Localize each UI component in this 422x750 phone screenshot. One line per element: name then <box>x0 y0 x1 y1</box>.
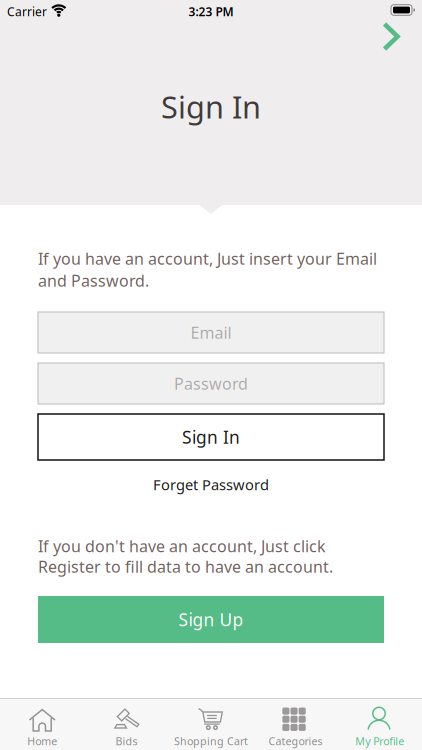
staticText: Carrier <box>7 3 47 19</box>
staticText: Bids <box>116 734 138 748</box>
staticText: Shopping Cart <box>174 734 248 748</box>
staticText: Sign Up <box>178 608 243 631</box>
staticText: If you don't have an account, Just click <box>38 535 326 557</box>
button[interactable]: Password <box>38 363 384 404</box>
button[interactable]: Shopping Cart <box>169 698 253 750</box>
staticText: Forget Password <box>153 475 269 494</box>
button[interactable]: Sign Up <box>38 596 384 643</box>
staticText: Home <box>27 734 57 748</box>
staticText: Password <box>174 373 248 394</box>
staticText: Email <box>190 322 231 343</box>
button[interactable]: My Profile <box>338 698 422 750</box>
button[interactable]: Categories <box>253 698 338 750</box>
staticText: Categories <box>268 734 322 748</box>
staticText: If you have an account, Just insert your… <box>38 248 377 269</box>
staticText: My Profile <box>355 734 404 748</box>
button[interactable]: Bids <box>84 698 169 750</box>
button[interactable]: Forget Password <box>121 471 301 497</box>
staticText: Register to fill data to have an account… <box>38 556 333 577</box>
button[interactable] <box>372 20 410 52</box>
staticText: 3:23 PM <box>188 3 233 19</box>
staticText: Sign In <box>161 86 261 127</box>
staticText: Sign In <box>182 425 240 448</box>
button[interactable]: Email <box>38 312 384 353</box>
button[interactable]: Home <box>0 698 84 750</box>
staticText: and Password. <box>38 270 149 291</box>
button[interactable]: Sign In <box>38 414 384 460</box>
